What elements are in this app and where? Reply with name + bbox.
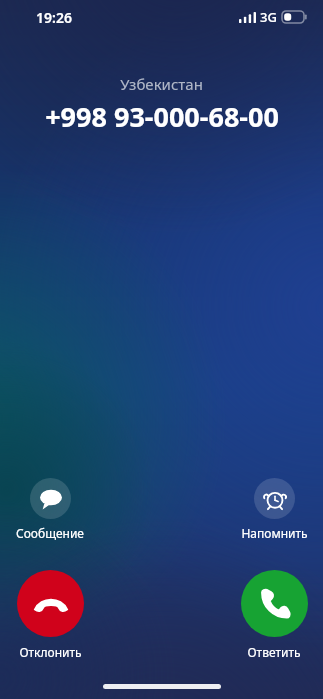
staticText: 3G — [260, 8, 277, 26]
staticText: Узбекистан — [120, 74, 203, 94]
button[interactable]: Remind me — [226, 478, 323, 541]
staticText: 19:26 — [36, 8, 72, 27]
staticText: +998 93-000-68-00 — [45, 98, 279, 135]
button[interactable]: Answer call — [225, 570, 323, 660]
staticText: Напомнить — [241, 525, 308, 541]
staticText: Сообщение — [16, 525, 84, 541]
button[interactable]: Message — [0, 478, 100, 541]
staticText: Ответить — [247, 644, 301, 660]
staticText: Отклонить — [19, 644, 82, 660]
button[interactable]: Decline call — [0, 570, 100, 660]
